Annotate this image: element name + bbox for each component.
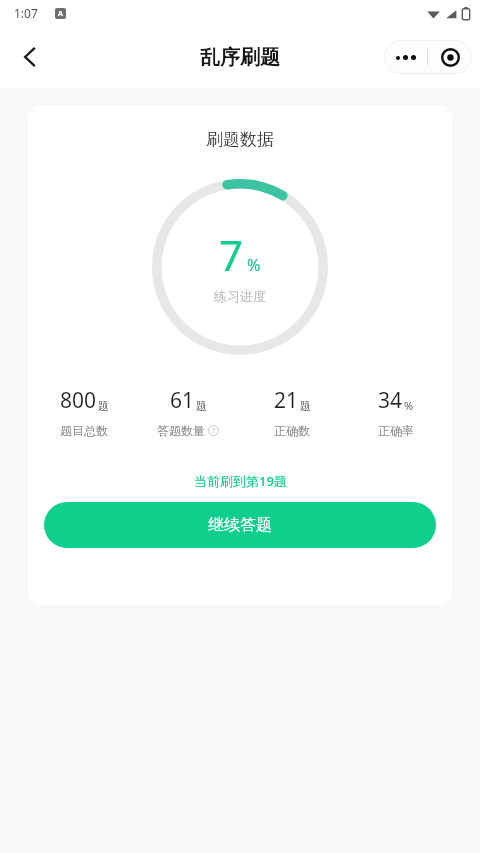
staticText: 刷题数据: [206, 129, 274, 150]
staticText: 题: [98, 399, 109, 413]
staticText: %: [404, 398, 414, 413]
button[interactable]: Back: [6, 33, 54, 81]
staticText: 正确数: [274, 423, 310, 438]
staticText: 答题数量: [157, 423, 205, 438]
staticText: 当前刷到第19题: [194, 472, 287, 490]
button[interactable]: 继续答题: [44, 502, 436, 548]
staticText: 7: [219, 226, 244, 283]
staticText: 题目总数: [60, 423, 108, 438]
staticText: A: [58, 9, 63, 19]
button[interactable]: More options: [384, 40, 427, 74]
staticText: 继续答题: [208, 515, 272, 535]
staticText: 800: [60, 386, 97, 415]
staticText: 题: [196, 399, 207, 413]
button[interactable]: Help: [208, 425, 219, 436]
staticText: 练习进度: [214, 288, 266, 304]
staticText: 21: [274, 386, 299, 415]
staticText: 61: [170, 386, 195, 415]
staticText: 1:07: [14, 5, 38, 21]
button[interactable]: Close: [428, 40, 472, 74]
staticText: 乱序刷题: [200, 45, 280, 70]
staticText: 题: [300, 399, 311, 413]
staticText: 34: [378, 386, 403, 415]
staticText: %: [247, 254, 261, 276]
staticText: ?: [212, 426, 216, 436]
staticText: 正确率: [378, 423, 414, 438]
